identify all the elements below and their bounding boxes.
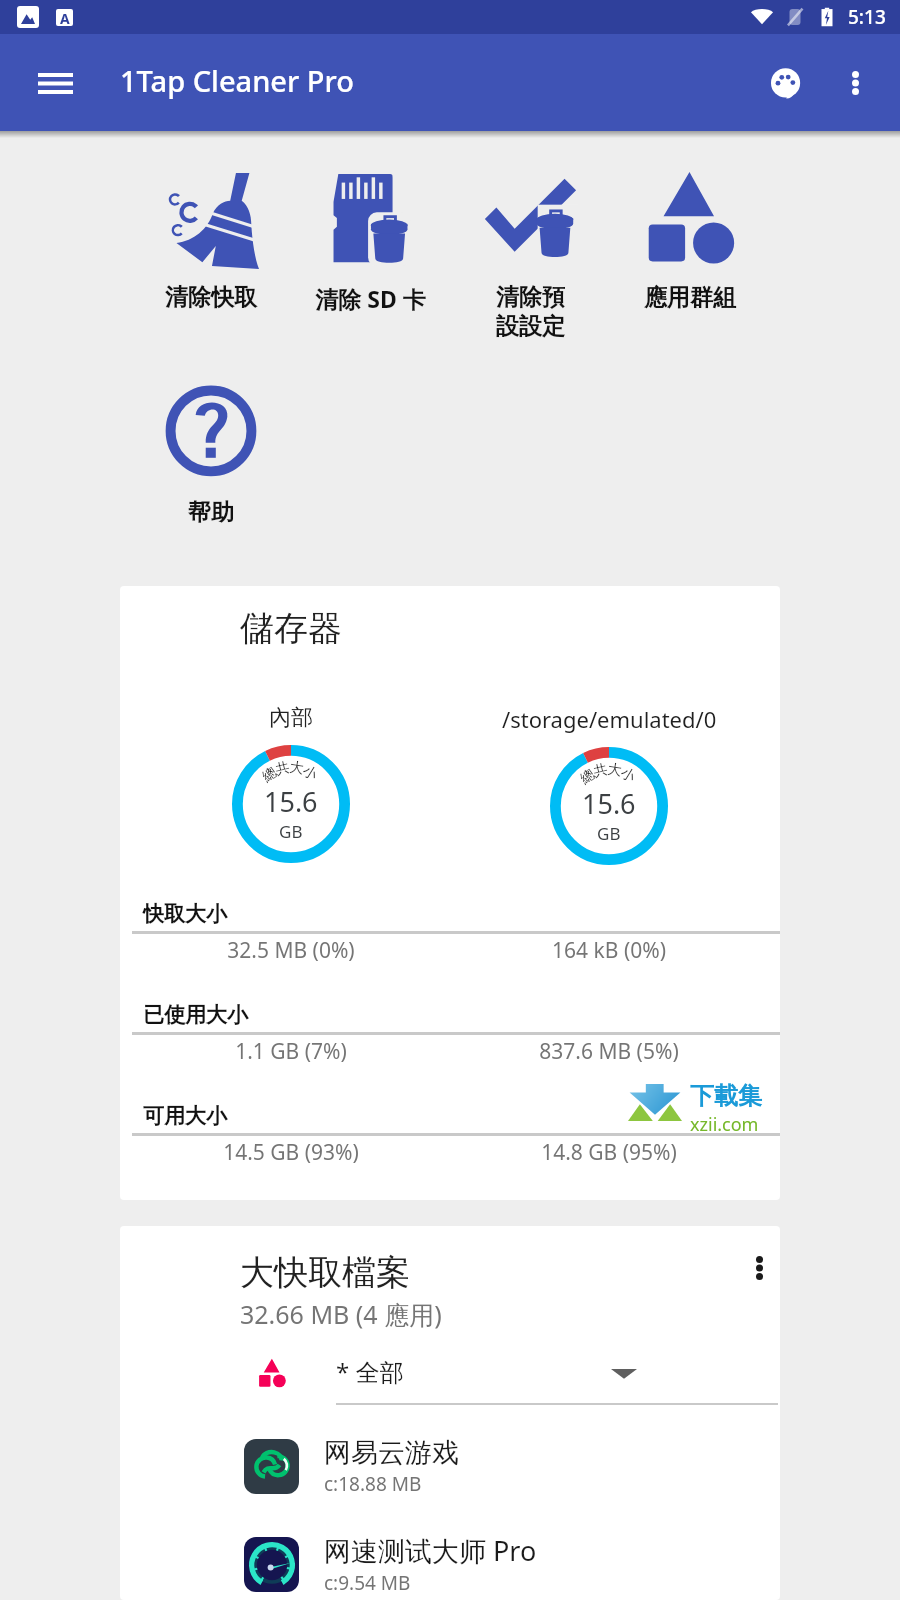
staticText: 已使用大小 <box>143 1002 248 1028</box>
button[interactable]: Change theme <box>748 45 824 121</box>
button[interactable]: 清除 SD 卡 <box>290 138 450 314</box>
button[interactable]: More options <box>824 52 886 114</box>
staticText: * 全部 <box>336 1355 404 1388</box>
button[interactable]: 清除預 設設定 <box>450 138 610 340</box>
button[interactable]: 网易云游戏 <box>120 1436 780 1497</box>
staticText: 應用群組 <box>644 283 736 312</box>
staticText: 清除快取 <box>165 283 257 312</box>
staticText: 14.8 GB (95%) <box>450 1138 768 1167</box>
staticText: /storage/emulated/0 <box>502 704 717 734</box>
staticText: 15.6 <box>582 785 636 822</box>
staticText: 15.6 <box>264 783 318 820</box>
staticText: c:9.54 MB <box>324 1570 411 1596</box>
staticText: 大快取檔案 <box>240 1251 410 1294</box>
staticText: 网易云游戏 <box>324 1436 459 1470</box>
staticText: 网速测试大师 Pro <box>324 1532 537 1569</box>
staticText: 清除 SD 卡 <box>315 283 426 314</box>
button[interactable]: 清除快取 <box>131 138 290 312</box>
button[interactable]: 网速测试大师 Pro <box>120 1532 780 1596</box>
staticText: 164 kB (0%) <box>450 936 768 965</box>
staticText: 快取大小 <box>143 901 227 927</box>
button[interactable]: More options <box>737 1238 780 1298</box>
staticText: 下載集 <box>690 1081 762 1111</box>
staticText: 32.66 MB (4 應用) <box>240 1297 442 1331</box>
staticText: A <box>60 9 70 26</box>
staticText: 內部 <box>269 704 313 732</box>
staticText: 可用大小 <box>143 1103 227 1129</box>
button[interactable]: Navigation menu <box>10 38 100 128</box>
staticText: 1.1 GB (7%) <box>132 1037 450 1066</box>
staticText: GB <box>597 822 621 845</box>
staticText: xzji.com <box>690 1112 759 1131</box>
staticText: GB <box>279 820 303 843</box>
staticText: 32.5 MB (0%) <box>132 936 450 965</box>
staticText: 5:13 <box>848 4 886 30</box>
button[interactable]: 帮助 <box>131 340 291 527</box>
staticText: 14.5 GB (93%) <box>132 1138 450 1167</box>
staticText: 837.6 MB (5%) <box>450 1037 768 1066</box>
staticText: 清除預 設設定 <box>496 283 565 340</box>
button[interactable]: * 全部 <box>120 1352 780 1407</box>
staticText: 1Tap Cleaner Pro <box>120 61 354 100</box>
staticText: 帮助 <box>188 498 234 527</box>
staticText: 儲存器 <box>240 607 342 650</box>
staticText: c:18.88 MB <box>324 1471 422 1497</box>
button[interactable]: 應用群組 <box>610 138 770 312</box>
